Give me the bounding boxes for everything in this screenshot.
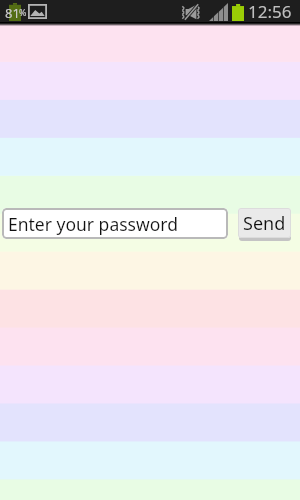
other: Sound muted bbox=[182, 4, 200, 20]
staticText: Send bbox=[243, 211, 286, 236]
staticText: % bbox=[19, 6, 27, 18]
button[interactable]: Send bbox=[238, 208, 291, 238]
staticText: Enter your password bbox=[8, 212, 178, 236]
button[interactable]: Enter your password bbox=[2, 208, 228, 239]
staticText: 81 bbox=[5, 4, 20, 22]
other: Battery bbox=[232, 4, 244, 21]
staticText: 12:56 bbox=[248, 0, 292, 22]
other: Signal strength bbox=[209, 3, 228, 21]
